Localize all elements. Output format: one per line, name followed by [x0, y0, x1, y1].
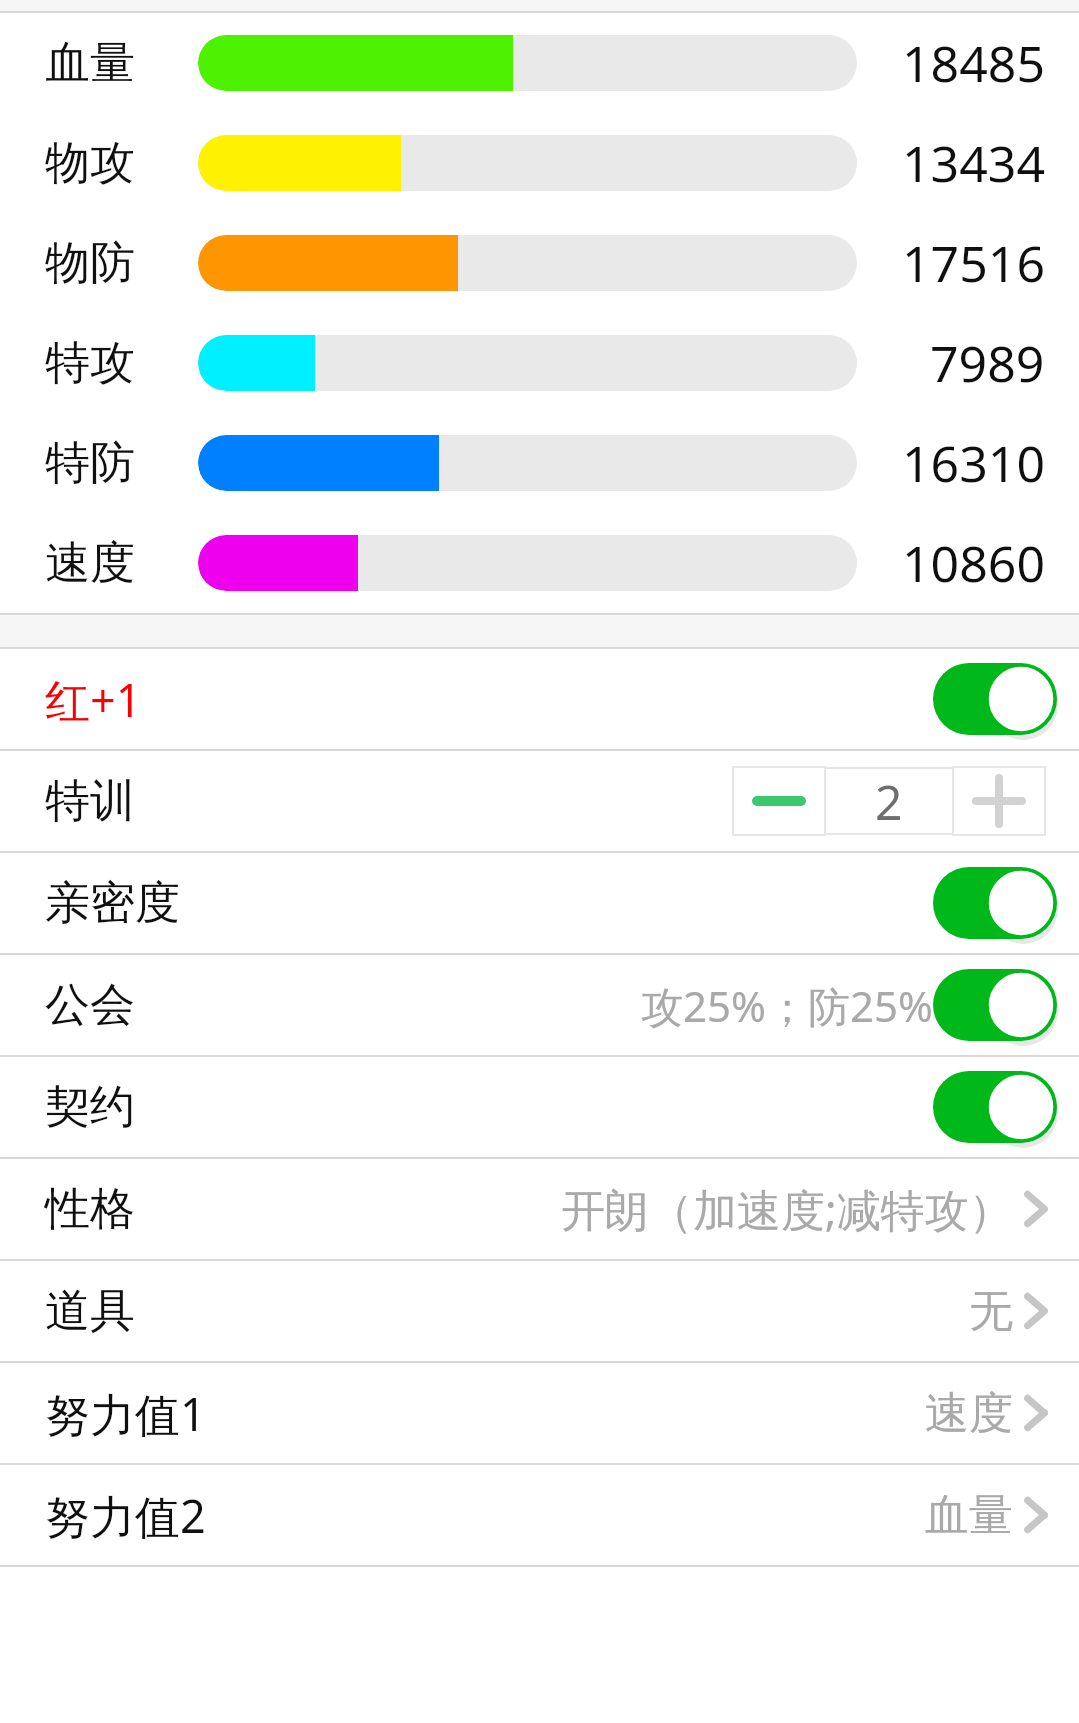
button[interactable]: 亲密度: [0, 853, 1079, 953]
button[interactable]: 努力值2: [0, 1465, 1079, 1565]
staticText: 努力值2: [45, 1485, 206, 1546]
button[interactable]: 契约: [0, 1057, 1079, 1157]
staticText: 16310: [902, 429, 1045, 497]
staticText: 17516: [902, 229, 1045, 297]
staticText: 7989: [930, 329, 1045, 397]
button[interactable]: plus: [953, 767, 1045, 835]
button[interactable]: 红+1: [0, 649, 1079, 749]
button[interactable]: 公会: [0, 955, 1079, 1055]
staticText: 血量: [925, 1488, 1013, 1543]
staticText: 18485: [902, 29, 1045, 97]
staticText: 开朗（加速度;减特攻）: [561, 1179, 1013, 1239]
staticText: 努力值1: [45, 1383, 206, 1444]
button[interactable]: 公会: [933, 969, 1057, 1041]
button[interactable]: minus: [733, 767, 825, 835]
button[interactable]: 道具: [0, 1261, 1079, 1361]
staticText: 物攻: [45, 135, 135, 192]
button[interactable]: 红+1: [933, 663, 1057, 735]
staticText: 性格: [45, 1181, 135, 1238]
staticText: 速度: [925, 1386, 1013, 1441]
staticText: 速度: [45, 535, 135, 592]
staticText: 10860: [902, 529, 1045, 597]
staticText: 13434: [902, 129, 1045, 197]
staticText: 契约: [45, 1079, 135, 1136]
staticText: 公会: [45, 977, 135, 1034]
staticText: 道具: [45, 1283, 135, 1340]
button[interactable]: 亲密度: [933, 867, 1057, 939]
staticText: 2: [875, 769, 903, 834]
staticText: 攻25%；防25%: [641, 977, 933, 1034]
staticText: 物防: [45, 235, 135, 292]
staticText: 红+1: [45, 669, 142, 730]
staticText: 特训: [45, 773, 135, 830]
staticText: 无: [969, 1284, 1013, 1339]
button[interactable]: 努力值1: [0, 1363, 1079, 1463]
button[interactable]: 契约: [933, 1071, 1057, 1143]
staticText: 特防: [45, 435, 135, 492]
staticText: 血量: [45, 35, 135, 92]
button[interactable]: 性格: [0, 1159, 1079, 1259]
staticText: 亲密度: [45, 875, 180, 932]
staticText: 特攻: [45, 335, 135, 392]
